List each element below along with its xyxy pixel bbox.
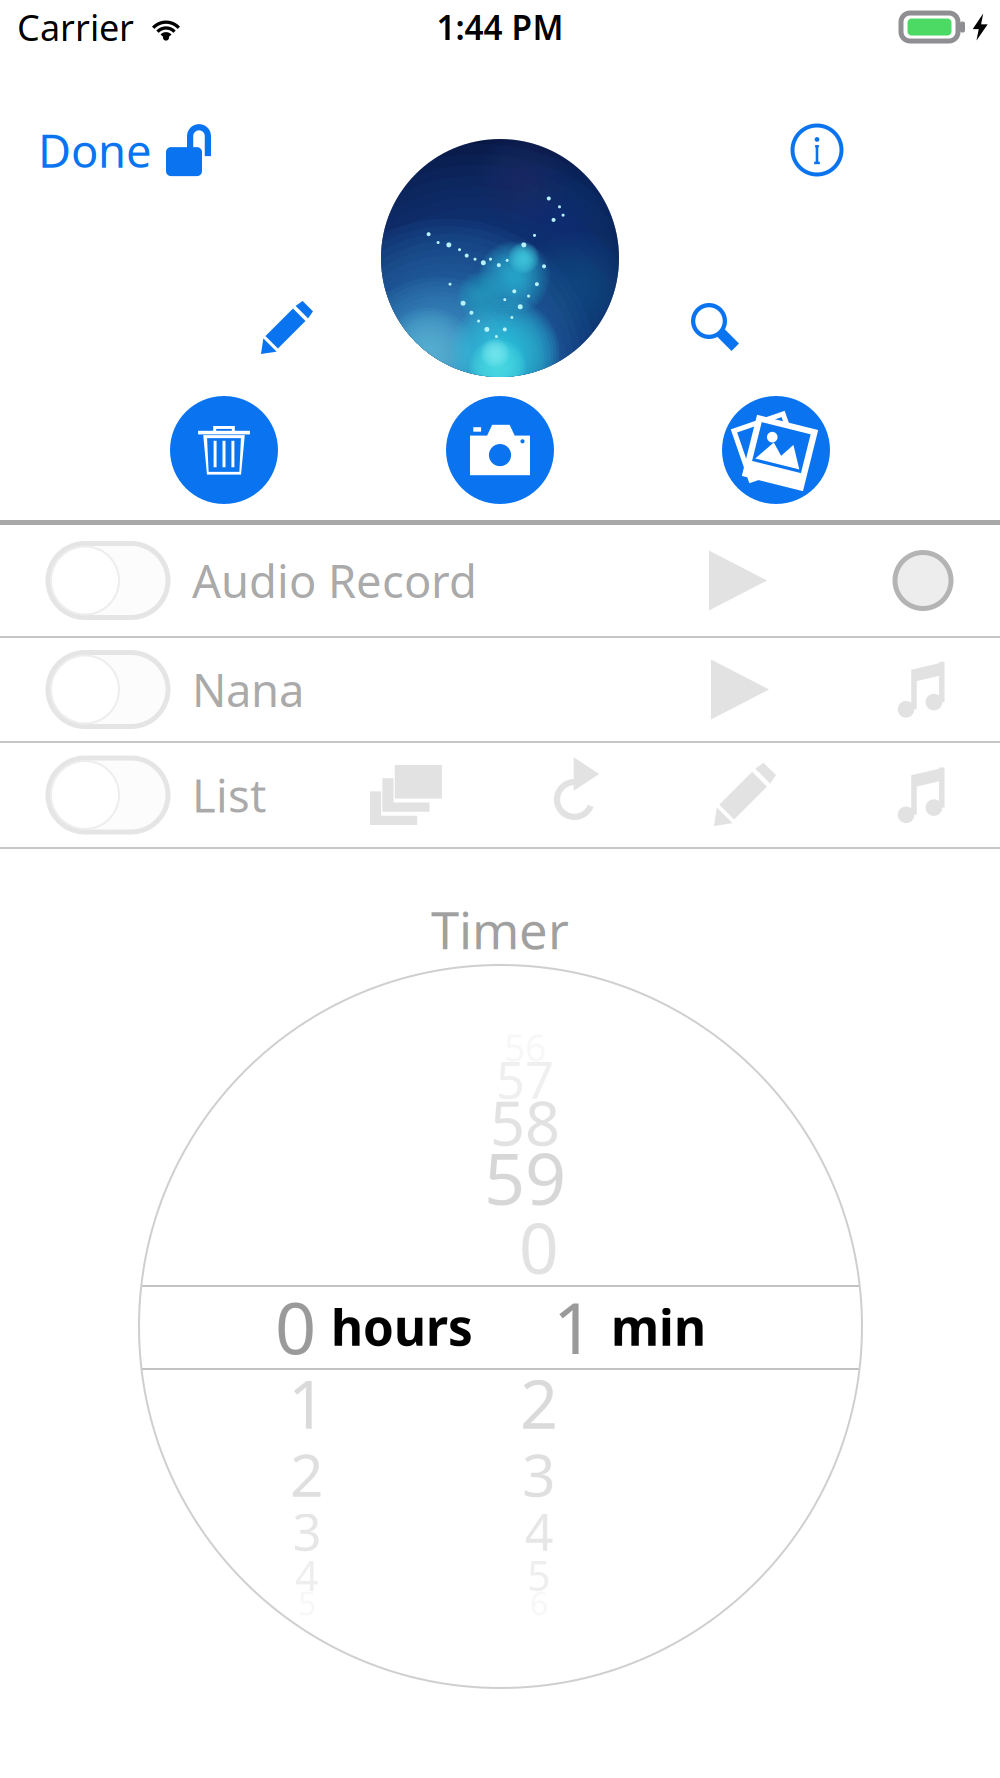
staticText: 2 <box>290 1435 324 1513</box>
staticText: 4 <box>295 1548 319 1602</box>
staticText: 1 <box>553 1279 594 1374</box>
button[interactable]: Photo Library <box>722 396 830 504</box>
staticText: 59 <box>484 1129 566 1225</box>
button[interactable]: Done <box>30 114 220 186</box>
staticText: min <box>611 1294 706 1359</box>
staticText: 1:44 PM <box>436 5 563 49</box>
staticText: Audio Record <box>192 550 477 611</box>
button[interactable]: Music <box>886 753 962 837</box>
staticText: 57 <box>496 1045 554 1113</box>
staticText: hours <box>331 1294 473 1359</box>
button[interactable]: Record <box>882 539 964 621</box>
staticText: 1 <box>288 1359 326 1447</box>
staticText: List <box>192 765 266 825</box>
button[interactable]: Info <box>784 117 850 183</box>
button[interactable]: Camera <box>446 396 554 504</box>
button[interactable]: Refresh <box>538 755 614 835</box>
staticText: Done <box>38 120 152 180</box>
button[interactable]: Music <box>886 647 962 731</box>
button[interactable]: Delete <box>170 396 278 504</box>
staticText: Timer <box>431 896 569 963</box>
staticText: Nana <box>192 659 304 720</box>
button[interactable]: Edit <box>702 752 788 838</box>
button[interactable]: Toggle Nana <box>0 652 192 726</box>
button[interactable]: Toggle Audio Record <box>0 543 192 617</box>
staticText: 0 <box>519 1201 559 1293</box>
staticText: Carrier <box>17 3 134 51</box>
button[interactable]: Duplicate <box>358 753 454 837</box>
staticText: 0 <box>275 1279 316 1374</box>
button[interactable]: Toggle List <box>0 758 192 832</box>
button[interactable]: Play <box>699 647 781 731</box>
staticText: 5 <box>298 1582 316 1624</box>
staticText: 6 <box>530 1582 548 1624</box>
button[interactable]: Edit <box>253 294 321 362</box>
staticText: 4 <box>524 1497 553 1565</box>
button[interactable]: Play <box>697 538 779 622</box>
staticText: 5 <box>527 1548 551 1602</box>
staticText: 3 <box>292 1497 321 1565</box>
staticText: 56 <box>504 1022 546 1072</box>
staticText: 58 <box>490 1081 560 1163</box>
button[interactable]: Search <box>682 294 748 360</box>
staticText: 3 <box>522 1435 556 1513</box>
staticText: 2 <box>520 1359 558 1447</box>
